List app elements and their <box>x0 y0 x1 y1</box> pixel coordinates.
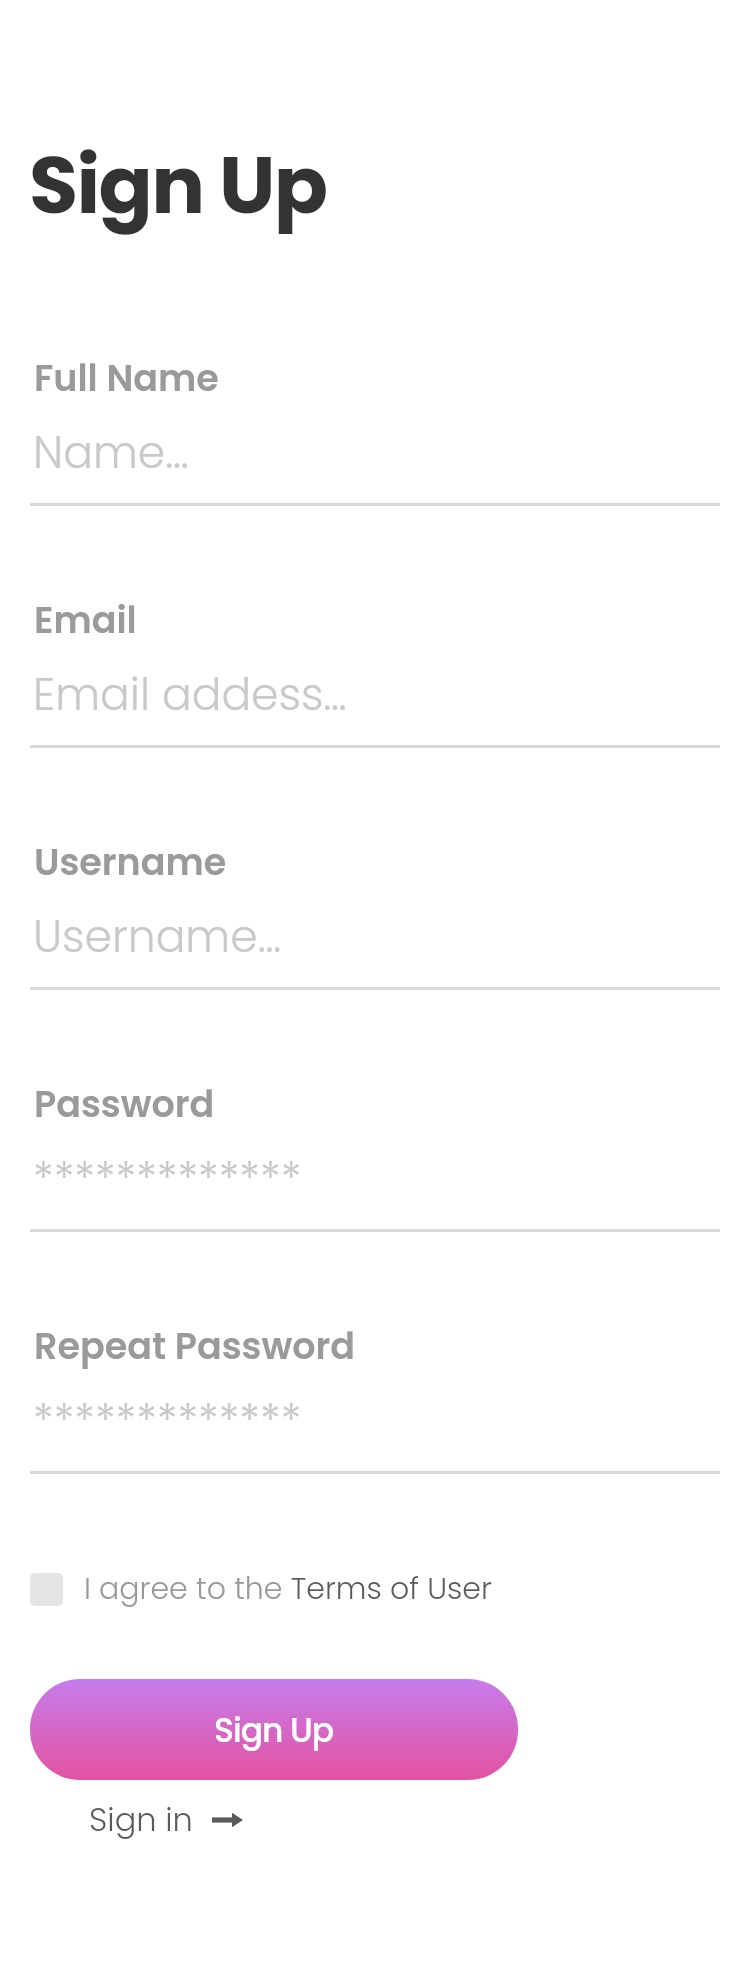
staticText: Password <box>34 1079 215 1130</box>
staticText: Sign Up <box>214 1707 334 1753</box>
button[interactable]: I agree to the Terms of User <box>30 1568 492 1610</box>
button[interactable] <box>30 1074 720 1232</box>
button[interactable] <box>30 1316 720 1474</box>
button[interactable]: Sign in <box>89 1797 243 1842</box>
staticText: Email addess… <box>33 664 347 726</box>
button[interactable]: Sign Up <box>30 1679 518 1780</box>
staticText: Repeat Password <box>34 1321 356 1372</box>
staticText: Username… <box>33 906 281 968</box>
staticText: Sign in <box>89 1797 193 1842</box>
button[interactable] <box>30 590 720 748</box>
staticText: ************* <box>33 1390 302 1452</box>
button[interactable] <box>30 348 720 506</box>
staticText: ************* <box>33 1148 302 1210</box>
staticText: Sign Up <box>29 129 327 241</box>
staticText: I agree to the Terms of User <box>84 1568 492 1610</box>
staticText: Username <box>34 837 227 888</box>
button[interactable] <box>30 832 720 990</box>
other: Go to sign in <box>212 1810 243 1830</box>
staticText: Name… <box>33 422 189 484</box>
staticText: Full Name <box>34 353 219 404</box>
staticText: Email <box>34 595 137 646</box>
